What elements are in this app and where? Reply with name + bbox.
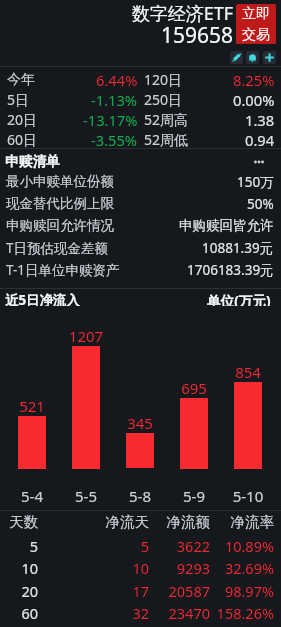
button[interactable]: T日预估现金差额 [6,238,274,257]
staticText: 申购赎回皆允许 [179,217,274,234]
staticText: 17 [0,581,149,601]
button[interactable]: 5日 [7,90,138,109]
staticText: 5-5 [61,486,111,506]
staticText: 净流额 [0,513,210,531]
staticText: 天数 [0,513,38,531]
button[interactable]: 250日 [144,90,275,109]
button[interactable]: Alerts [246,51,259,64]
staticText: 10 [0,558,38,578]
staticText: -3.55% [91,130,138,149]
staticText: 20日 [7,110,38,129]
staticText: 250日 [144,90,183,109]
button[interactable]: 最小申赎单位份额 [6,172,274,191]
button[interactable]: 60日 [7,130,138,149]
staticText: 120日 [144,70,183,89]
button[interactable]: T-1日单位申赎资产 [6,260,274,279]
staticText: 521 [7,396,57,416]
button[interactable]: 120日 [144,70,275,89]
staticText: 854 [223,362,273,382]
staticText: -13.17% [83,110,138,129]
staticText: 10881.39元 [202,239,274,257]
staticText: 申购赎回允许情况 [6,217,114,234]
staticText: 150万 [237,173,274,191]
staticText: 695 [169,378,219,398]
staticText: 345 [115,413,165,433]
staticText: 98.97% [0,581,274,601]
staticText: 1.38 [245,110,275,129]
staticText: 申赎清单 [5,153,60,170]
staticText: 10.89% [0,536,274,556]
staticText: 8.25% [233,70,275,89]
staticText: 158.26% [0,603,274,623]
staticText: 单位(万元) [207,291,271,306]
staticText: 5日 [7,90,30,109]
staticText: -1.13% [91,90,138,109]
staticText: 60日 [7,130,38,149]
staticText: 净流率 [0,513,274,531]
staticText: 159658 [0,21,233,50]
staticText: 23470 [0,603,210,623]
button[interactable]: 52周低 [144,130,275,149]
staticText: 交易 [242,26,270,44]
staticText: 0.00% [233,90,275,109]
button[interactable]: 今年 [7,70,138,89]
staticText: 20587 [0,581,210,601]
staticText: 5 [0,536,38,556]
staticText: 5-8 [115,486,165,506]
staticText: 5 [0,536,149,556]
staticText: 52周低 [144,130,189,149]
staticText: 1706183.39元 [187,261,274,279]
staticText: 近5日净流入 [5,291,80,306]
staticText: 9293 [0,558,210,578]
staticText: 1207 [61,326,111,346]
staticText: 6.44% [96,70,138,89]
staticText: 今年 [7,71,35,89]
staticText: 0.94 [245,130,275,149]
staticText: 50% [247,195,274,213]
button[interactable]: 申购赎回允许情况 [6,216,274,235]
staticText: 60 [0,603,38,623]
staticText: 5-10 [223,486,273,506]
staticText: 3622 [0,536,210,556]
button[interactable]: 立即 [236,4,276,44]
staticText: 5-4 [7,486,57,506]
button[interactable]: Add [263,51,276,64]
staticText: 现金替代比例上限 [6,195,114,212]
staticText: 32 [0,603,149,623]
button[interactable]: Edit [230,51,243,64]
staticText: 最小申赎单位份额 [6,173,114,190]
staticText: 20 [0,581,38,601]
staticText: T-1日单位申赎资产 [6,261,120,279]
button[interactable]: 现金替代比例上限 [6,194,274,213]
staticText: T日预估现金差额 [6,239,109,257]
staticText: 净流天 [0,513,149,531]
button[interactable]: 52周高 [144,110,275,129]
staticText: 数字经济ETF [0,1,233,26]
staticText: 5-9 [169,486,219,506]
staticText: 立即 [242,5,270,23]
button[interactable]: 20日 [7,110,138,129]
staticText: 32.69% [0,558,274,578]
staticText: 52周高 [144,110,189,129]
staticText: 10 [0,558,149,578]
button[interactable]: 申赎清单 [5,153,264,170]
